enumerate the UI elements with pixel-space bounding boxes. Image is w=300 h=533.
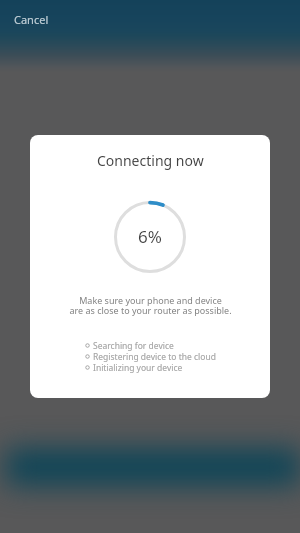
staticText: 6%: [138, 225, 162, 248]
staticText: Connecting now: [97, 151, 204, 170]
staticText: Cancel: [14, 12, 49, 27]
staticText: Make sure your phone and device are as c…: [69, 294, 232, 316]
staticText: Initializing your device: [93, 362, 183, 373]
button[interactable]: Cancel: [6, 7, 57, 32]
button[interactable]: Registering device to the cloud: [85, 351, 216, 362]
button[interactable]: Searching for device: [85, 340, 174, 351]
staticText: Searching for device: [93, 340, 174, 351]
button[interactable]: Initializing your device: [85, 362, 183, 373]
staticText: Registering device to the cloud: [93, 351, 216, 362]
